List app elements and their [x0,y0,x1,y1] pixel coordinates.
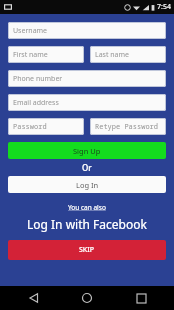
button[interactable]: Home [67,286,107,310]
staticText: Username [13,26,48,36]
staticText: Email address [13,98,59,108]
staticText: Password [13,122,47,132]
button[interactable]: Password [8,118,84,135]
button[interactable]: Log In [8,176,166,193]
button[interactable]: Username [8,22,166,39]
button[interactable]: Sign Up [8,142,166,159]
staticText: Phone number [13,74,63,84]
staticText: Retype Password [95,122,158,132]
button[interactable]: Phone number [8,70,166,87]
staticText: Log In with Facebook [27,216,147,232]
button[interactable]: Back [14,286,54,310]
staticText: SKIP [79,245,95,255]
button[interactable]: First name [8,46,84,63]
button[interactable]: Log In with Facebook [8,216,166,232]
staticText: You can also [68,203,106,212]
staticText: 7:54 [157,2,171,12]
button[interactable]: SKIP [8,240,166,260]
staticText: Sign Up [73,146,101,156]
staticText: Or [82,162,92,173]
button[interactable]: Email address [8,94,166,111]
button[interactable]: Recents [121,286,161,310]
staticText: Last name [95,50,130,60]
button[interactable]: Last name [90,46,166,63]
button[interactable]: Retype Password [90,118,166,135]
staticText: Log In [76,180,99,190]
staticText: First name [13,50,48,60]
